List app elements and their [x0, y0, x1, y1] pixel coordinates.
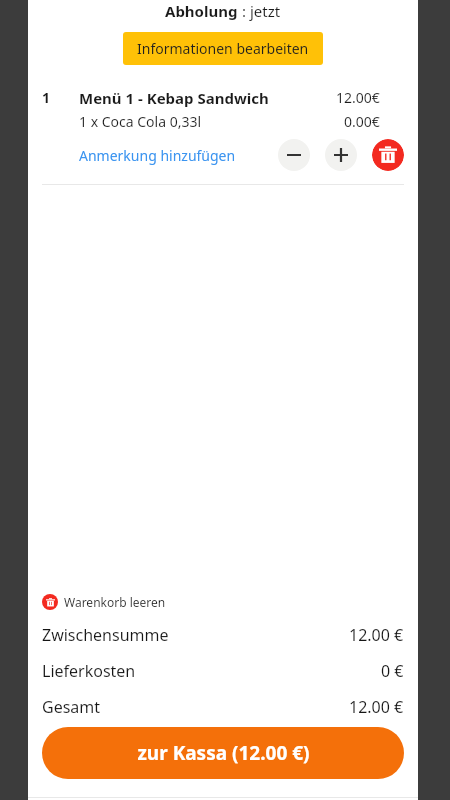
staticText: 12.00€ — [336, 88, 380, 107]
button[interactable]: zur Kassa (12.00 €) — [42, 727, 404, 779]
staticText: 1 — [42, 88, 79, 107]
button[interactable]: Warenkorb leeren — [42, 594, 166, 610]
staticText: 12.00 € — [349, 696, 404, 718]
staticText: 12.00 € — [349, 624, 404, 646]
staticText: 0.00€ — [344, 112, 380, 131]
button[interactable]: Informationen bearbeiten — [123, 32, 323, 65]
staticText: Gesamt — [42, 696, 101, 718]
staticText: zur Kassa (12.00 €) — [137, 740, 310, 766]
staticText: Lieferkosten — [42, 660, 136, 682]
button[interactable]: Remove item — [372, 139, 404, 171]
staticText: : jetzt — [242, 1, 281, 21]
staticText: Zwischensumme — [42, 624, 169, 646]
staticText: 1 x Coca Cola 0,33l — [79, 112, 202, 131]
staticText: Anmerkung hinzufügen — [79, 146, 236, 165]
staticText: Menü 1 - Kebap Sandwich — [79, 88, 269, 108]
staticText: Informationen bearbeiten — [137, 39, 309, 58]
button[interactable]: Decrease quantity — [278, 139, 310, 171]
staticText: 0 € — [381, 660, 404, 682]
staticText: Warenkorb leeren — [64, 594, 166, 610]
button[interactable]: Increase quantity — [325, 139, 357, 171]
button[interactable]: Anmerkung hinzufügen — [79, 146, 236, 165]
staticText: Abholung — [165, 1, 238, 21]
